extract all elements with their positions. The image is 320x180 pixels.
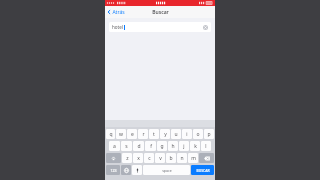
staticText: e <box>131 131 134 138</box>
button[interactable]: v <box>155 153 165 163</box>
staticText: space <box>162 168 172 173</box>
button[interactable]: o <box>193 129 203 139</box>
button[interactable]: k <box>190 141 200 151</box>
button[interactable]: Cambiar idioma <box>121 165 131 175</box>
button[interactable]: u <box>171 129 181 139</box>
button[interactable]: n <box>177 153 187 163</box>
staticText: n <box>180 155 184 162</box>
staticText: z <box>126 155 129 162</box>
staticText: q <box>109 131 113 138</box>
staticText: Buscar <box>152 9 169 16</box>
button[interactable]: Dictado <box>132 165 142 175</box>
staticText: x <box>137 155 140 162</box>
button[interactable]: g <box>157 141 167 151</box>
staticText: y <box>164 131 167 138</box>
staticText: p <box>207 131 211 138</box>
staticText: w <box>119 131 123 138</box>
button[interactable]: i <box>182 129 192 139</box>
button[interactable]: e <box>127 129 137 139</box>
staticText: o <box>196 131 200 138</box>
button[interactable]: c <box>144 153 154 163</box>
button[interactable]: b <box>166 153 176 163</box>
button[interactable]: Atrás <box>107 6 125 18</box>
staticText: g <box>160 143 164 150</box>
staticText: c <box>148 155 151 162</box>
button[interactable]: m <box>188 153 198 163</box>
button[interactable]: Mayúsculas <box>106 153 121 163</box>
button[interactable]: p <box>204 129 214 139</box>
button[interactable]: j <box>179 141 189 151</box>
button[interactable]: hotel <box>109 22 211 32</box>
staticText: 123 <box>110 168 117 173</box>
staticText: m <box>191 155 196 162</box>
button[interactable]: d <box>133 141 144 151</box>
staticText: h <box>171 143 175 150</box>
staticText: a <box>113 143 116 150</box>
button[interactable]: x <box>133 153 143 163</box>
button[interactable]: f <box>145 141 156 151</box>
button[interactable]: a <box>109 141 120 151</box>
staticText: u <box>174 131 178 138</box>
button[interactable]: s <box>121 141 132 151</box>
button[interactable]: 123 <box>106 165 120 175</box>
staticText: s <box>125 143 128 150</box>
staticText: l <box>205 143 207 150</box>
button[interactable]: y <box>160 129 170 139</box>
staticText: i <box>186 131 188 138</box>
staticText: t <box>153 131 155 138</box>
staticText: d <box>137 143 141 150</box>
staticText: v <box>159 155 162 162</box>
staticText: k <box>194 143 197 150</box>
staticText: hotel <box>112 24 123 30</box>
button[interactable]: l <box>201 141 211 151</box>
staticText: r <box>142 131 145 138</box>
button[interactable]: space <box>143 165 190 175</box>
button[interactable]: w <box>116 129 126 139</box>
staticText: BUSCAR <box>196 168 210 173</box>
button[interactable]: r <box>138 129 148 139</box>
button[interactable]: q <box>106 129 115 139</box>
button[interactable]: t <box>149 129 159 139</box>
button[interactable]: h <box>168 141 178 151</box>
button[interactable]: Borrar <box>199 153 214 163</box>
staticText: f <box>150 143 152 150</box>
button[interactable]: Borrar texto <box>202 24 208 30</box>
button[interactable]: BUSCAR <box>191 165 214 175</box>
staticText: Atrás <box>112 9 125 16</box>
staticText: b <box>169 155 173 162</box>
staticText: j <box>183 143 185 150</box>
button[interactable]: z <box>122 153 132 163</box>
